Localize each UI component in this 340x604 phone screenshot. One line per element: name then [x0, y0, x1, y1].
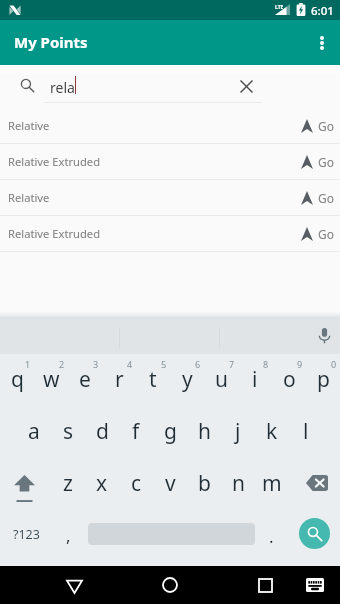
- button[interactable]: s: [51, 406, 85, 458]
- staticText: k: [266, 417, 278, 446]
- staticText: 8: [263, 358, 269, 370]
- staticText: 2: [59, 358, 65, 370]
- staticText: rela: [50, 78, 75, 97]
- button[interactable]: z: [51, 458, 85, 510]
- button[interactable]: Clear search: [234, 74, 258, 98]
- staticText: n: [232, 469, 245, 498]
- staticText: 0: [331, 358, 337, 370]
- staticText: 1: [25, 358, 31, 370]
- staticText: o: [283, 365, 296, 394]
- button[interactable]: 2: [34, 354, 68, 406]
- staticText: 6: [195, 358, 201, 370]
- button[interactable]: Search: [299, 518, 330, 549]
- staticText: Go: [318, 190, 334, 206]
- button[interactable]: Relative: [0, 108, 340, 144]
- button[interactable]: h: [187, 406, 221, 458]
- staticText: y: [182, 365, 193, 394]
- staticText: t: [149, 365, 157, 394]
- button[interactable]: Recent apps: [243, 566, 287, 604]
- button[interactable]: Backspace: [289, 458, 340, 510]
- staticText: x: [96, 469, 108, 498]
- button[interactable]: Relative Extruded: [0, 216, 340, 252]
- staticText: q: [11, 365, 24, 394]
- staticText: 9: [297, 358, 303, 370]
- staticText: v: [165, 469, 176, 498]
- staticText: p: [317, 365, 330, 394]
- staticText: m: [262, 469, 282, 498]
- button[interactable]: d: [85, 406, 119, 458]
- button[interactable]: [87, 510, 256, 566]
- staticText: i: [252, 365, 258, 394]
- button[interactable]: ?123: [0, 510, 53, 566]
- button[interactable]: Back: [52, 566, 96, 604]
- button[interactable]: 9: [272, 354, 306, 406]
- button[interactable]: 5: [136, 354, 170, 406]
- button[interactable]: g: [153, 406, 187, 458]
- staticText: b: [198, 469, 211, 498]
- button[interactable]: 0: [306, 354, 340, 406]
- staticText: z: [63, 469, 73, 498]
- button[interactable]: a: [17, 406, 51, 458]
- staticText: w: [43, 365, 60, 394]
- staticText: f: [132, 417, 140, 446]
- staticText: j: [235, 417, 241, 446]
- staticText: Go: [318, 118, 334, 134]
- button[interactable]: f: [119, 406, 153, 458]
- staticText: s: [63, 417, 74, 446]
- button[interactable]: Shift: [0, 458, 51, 510]
- staticText: Relative: [8, 190, 50, 205]
- button[interactable]: j: [221, 406, 255, 458]
- button[interactable]: l: [289, 406, 323, 458]
- button[interactable]: 1: [0, 354, 34, 406]
- button[interactable]: 6: [170, 354, 204, 406]
- button[interactable]: b: [187, 458, 221, 510]
- staticText: ?123: [13, 526, 40, 543]
- staticText: Relative: [8, 118, 50, 133]
- staticText: Relative Extruded: [8, 154, 101, 169]
- button[interactable]: 4: [102, 354, 136, 406]
- button[interactable]: m: [255, 458, 289, 510]
- button[interactable]: ,: [53, 510, 87, 566]
- button[interactable]: 7: [204, 354, 238, 406]
- button[interactable]: n: [221, 458, 255, 510]
- staticText: My Points: [14, 32, 88, 52]
- staticText: 4: [127, 358, 133, 370]
- staticText: l: [303, 417, 309, 446]
- staticText: 7: [229, 358, 235, 370]
- staticText: u: [215, 365, 228, 394]
- button[interactable]: k: [255, 406, 289, 458]
- button[interactable]: x: [85, 458, 119, 510]
- staticText: Relative Extruded: [8, 226, 101, 241]
- staticText: c: [131, 469, 142, 498]
- staticText: 3: [93, 358, 99, 370]
- button[interactable]: Switch keyboard: [293, 566, 337, 604]
- staticText: r: [115, 365, 124, 394]
- staticText: LTE: [275, 4, 284, 11]
- staticText: a: [28, 417, 40, 446]
- button[interactable]: 3: [68, 354, 102, 406]
- staticText: 6:01: [311, 3, 334, 19]
- staticText: Go: [318, 154, 334, 170]
- button[interactable]: .: [256, 510, 290, 566]
- button[interactable]: Home: [148, 566, 192, 604]
- staticText: ,: [66, 524, 71, 547]
- staticText: 5: [161, 358, 167, 370]
- button[interactable]: c: [119, 458, 153, 510]
- staticText: g: [164, 417, 177, 446]
- button[interactable]: More options: [301, 22, 340, 64]
- button[interactable]: Relative Extruded: [0, 144, 340, 180]
- staticText: e: [79, 365, 91, 394]
- staticText: h: [198, 417, 211, 446]
- button[interactable]: Relative: [0, 180, 340, 216]
- button[interactable]: v: [153, 458, 187, 510]
- button[interactable]: 8: [238, 354, 272, 406]
- staticText: Go: [318, 226, 334, 242]
- staticText: .: [269, 525, 274, 548]
- button[interactable]: Voice input: [311, 322, 337, 348]
- staticText: d: [96, 417, 109, 446]
